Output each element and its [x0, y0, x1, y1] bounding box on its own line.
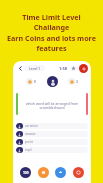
button[interactable]: Player — [26, 78, 33, 85]
button[interactable]: Current player — [47, 76, 58, 87]
staticText: which word will be arranged from scrambl… — [25, 101, 79, 109]
button[interactable]: Level 1 — [24, 65, 45, 71]
button[interactable]: Favourite — [70, 65, 77, 72]
staticText: Time Limit Level Challange — [4, 12, 99, 32]
button[interactable]: Score — [20, 167, 31, 178]
staticText: 2 — [76, 79, 78, 84]
button[interactable]: variation — [16, 123, 88, 129]
staticText: Level 1 — [29, 66, 41, 71]
staticText: Earn Coins and lots more features — [4, 33, 99, 53]
staticText: repli — [25, 148, 32, 152]
staticText: point — [25, 140, 33, 144]
button[interactable]: Restart — [73, 167, 84, 178]
staticText: answer — [25, 132, 36, 136]
button[interactable]: which word will be arranged from scrambl… — [20, 91, 84, 118]
staticText: 100 — [23, 171, 29, 175]
button[interactable]: Back — [16, 64, 24, 72]
button[interactable]: Shuffle — [55, 167, 66, 178]
staticText: variation — [25, 124, 39, 128]
button[interactable]: Player — [68, 78, 75, 85]
button[interactable]: repli — [16, 147, 88, 153]
button[interactable]: point — [16, 139, 88, 145]
staticText: 8 — [34, 79, 36, 84]
staticText: 1:58 — [59, 66, 67, 71]
button[interactable]: Settings — [79, 64, 88, 73]
button[interactable]: answer — [16, 131, 88, 137]
button[interactable]: Hint — [38, 167, 49, 178]
